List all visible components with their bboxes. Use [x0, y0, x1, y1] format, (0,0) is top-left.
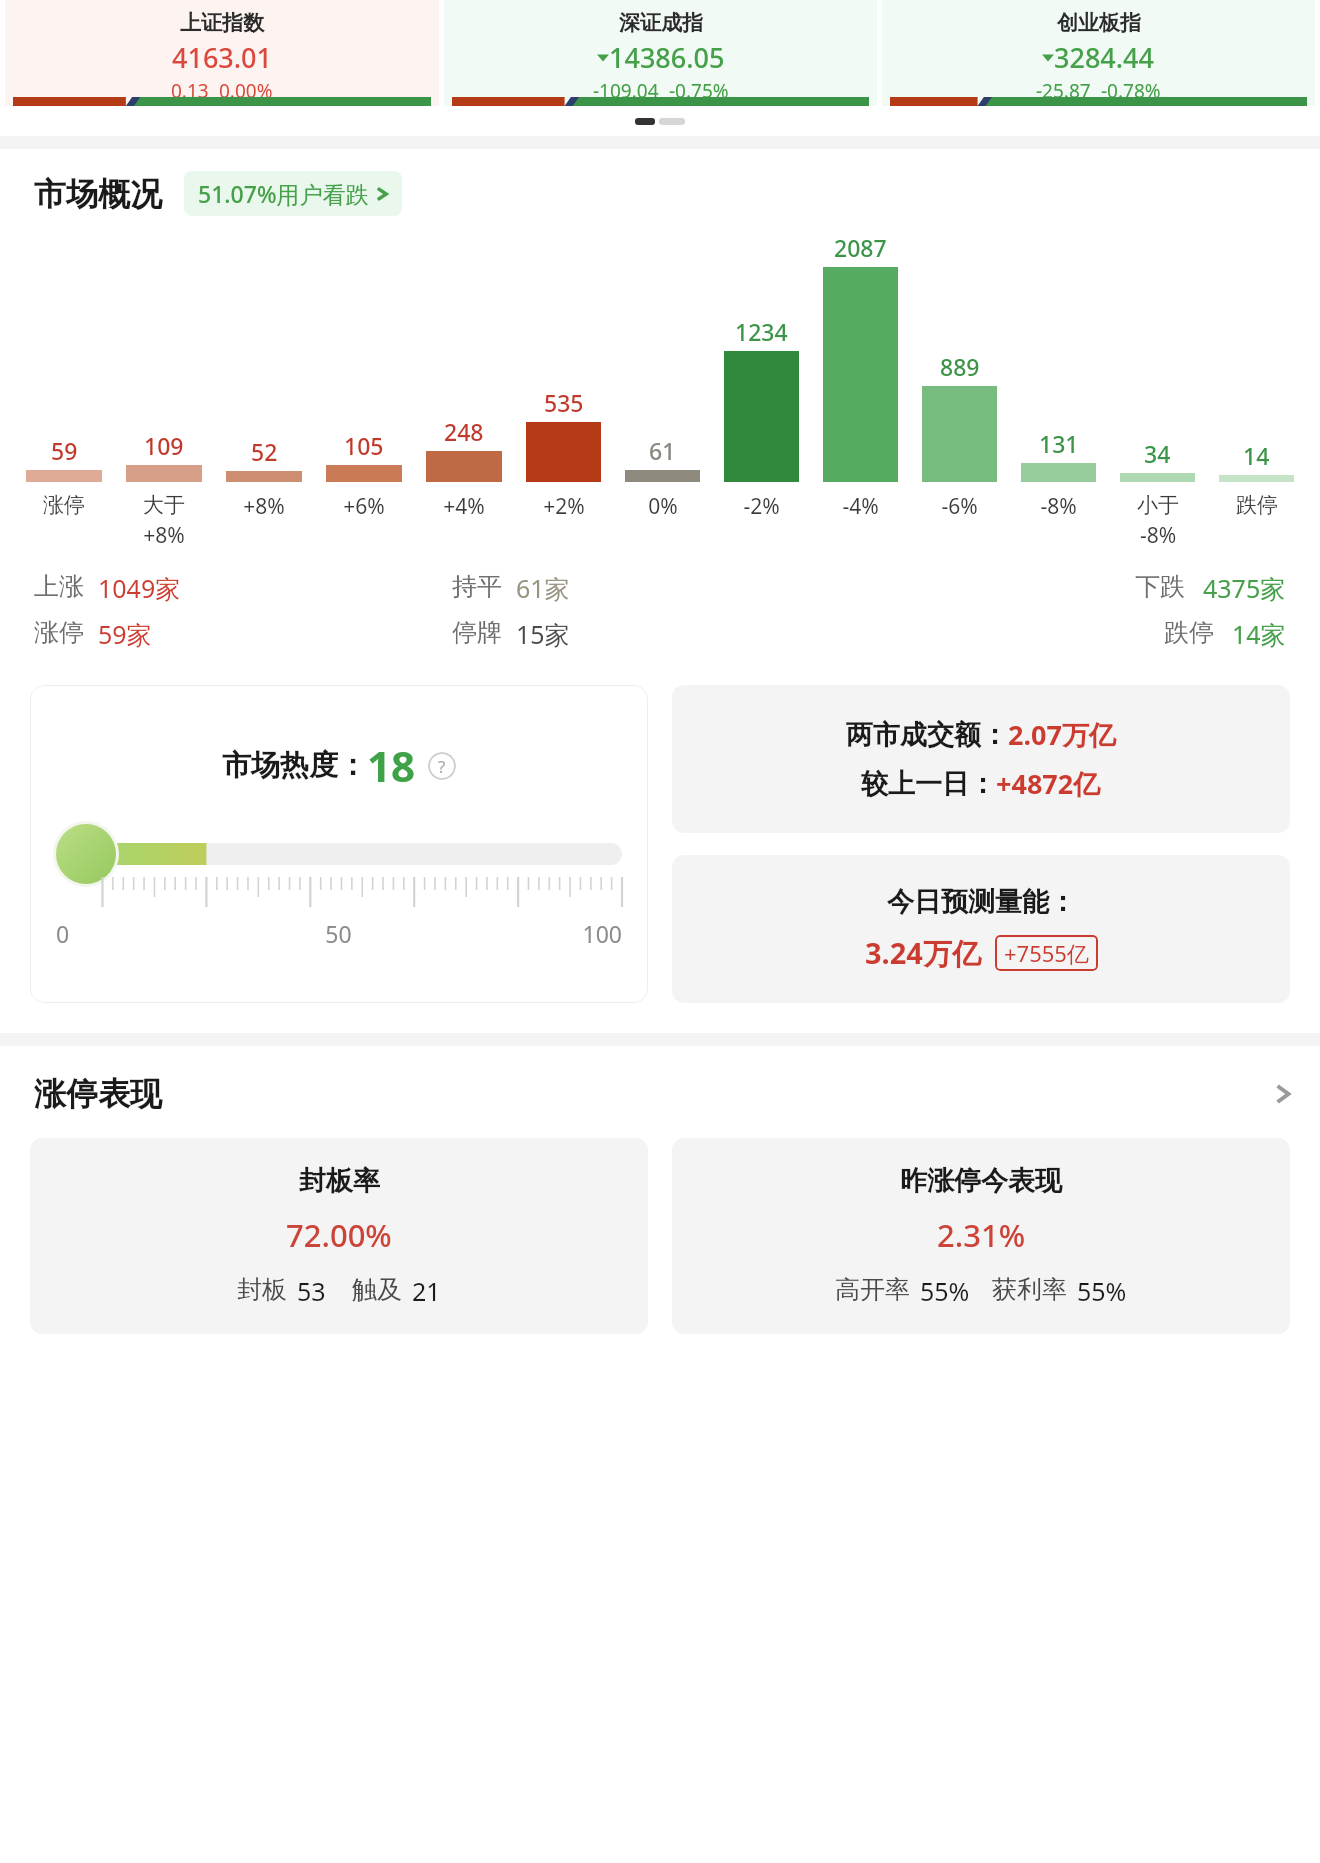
button[interactable]: 封板率	[30, 1138, 648, 1334]
staticText: +7555亿	[1004, 938, 1089, 968]
staticText: -8%	[1040, 492, 1077, 521]
staticText: 50	[244, 918, 433, 949]
staticText: 889	[940, 351, 980, 382]
staticText: +4%	[443, 492, 485, 521]
staticText: 59家	[98, 617, 152, 651]
staticText: 封板	[237, 1274, 287, 1305]
staticText: 3.24万亿	[865, 933, 981, 973]
staticText: 0.00%	[219, 78, 273, 104]
staticText: 昨涨停今表现	[900, 1164, 1062, 1198]
staticText: 131	[1039, 428, 1079, 459]
staticText: -2%	[743, 492, 780, 521]
staticText: 涨停表现	[34, 1074, 162, 1114]
button[interactable]: 市场热度：	[30, 685, 648, 1003]
staticText: -0.78%	[1101, 78, 1161, 104]
button[interactable]: 深证成指	[444, 0, 877, 106]
button[interactable]: 上证指数	[5, 0, 439, 106]
staticText: 高开率	[835, 1274, 910, 1305]
staticText: -0.75%	[669, 78, 729, 104]
staticText: 2.31%	[937, 1214, 1026, 1256]
staticText: 59	[51, 435, 78, 466]
staticText: 0%	[648, 492, 678, 521]
staticText: +8%	[243, 492, 285, 521]
staticText: 535	[544, 387, 584, 418]
staticText: 今日预测量能：	[887, 885, 1076, 919]
staticText: 两市成交额：	[846, 718, 1008, 752]
staticText: 上证指数	[180, 10, 264, 36]
staticText: 创业板指	[1057, 10, 1141, 36]
staticText: 14家	[1232, 617, 1286, 651]
staticText: 小于 -8%	[1137, 492, 1179, 549]
staticText: 市场热度：	[222, 747, 367, 784]
staticText: 61家	[516, 571, 570, 605]
staticText: 55%	[920, 1274, 970, 1308]
staticText: 72.00%	[286, 1214, 392, 1256]
staticText: 61	[649, 435, 676, 466]
staticText: +6%	[343, 492, 385, 521]
staticText: 15家	[516, 617, 570, 651]
staticText: 2087	[834, 232, 887, 263]
button[interactable]: 51.07%用户看跌	[184, 171, 402, 216]
staticText: 停牌	[452, 617, 502, 648]
staticText: 涨停	[34, 617, 84, 648]
staticText: 109	[144, 430, 184, 461]
staticText: 55%	[1077, 1274, 1127, 1308]
staticText: 14	[1243, 440, 1270, 471]
staticText: 1049家	[98, 571, 181, 605]
staticText: -4%	[842, 492, 879, 521]
staticText: -6%	[941, 492, 978, 521]
staticText: -25.87	[1036, 78, 1091, 104]
staticText: 跌停	[1236, 492, 1278, 518]
staticText: ?	[438, 755, 446, 778]
staticText: -109.04	[593, 78, 659, 104]
staticText: 4163.01	[172, 39, 273, 76]
staticText: 21	[412, 1274, 441, 1308]
other: 更多	[1274, 1078, 1292, 1110]
staticText: 获利率	[992, 1274, 1067, 1305]
staticText: 较上一日：	[861, 767, 996, 801]
staticText: 100	[433, 918, 622, 949]
staticText: 涨停	[43, 492, 85, 518]
staticText: 跌停	[1164, 617, 1214, 648]
button[interactable]: 今日预测量能：	[672, 855, 1290, 1003]
staticText: 深证成指	[619, 10, 703, 36]
staticText: 51.07%用户看跌	[198, 178, 369, 209]
button[interactable]: 创业板指	[882, 0, 1315, 106]
staticText: 触及	[352, 1274, 402, 1305]
staticText: 34	[1144, 438, 1171, 469]
button[interactable]: 两市成交额：	[672, 685, 1290, 833]
staticText: 4375家	[1203, 571, 1286, 605]
staticText: +4872亿	[996, 765, 1101, 802]
staticText: 52	[251, 436, 278, 467]
staticText: 大于 +8%	[143, 492, 185, 549]
staticText: 2.07万亿	[1008, 716, 1116, 753]
staticText: 1234	[735, 316, 788, 347]
staticText: 市场概况	[34, 174, 162, 214]
staticText: 0.13	[171, 78, 209, 104]
staticText: 18	[367, 737, 416, 794]
staticText: +2%	[543, 492, 585, 521]
staticText: 53	[297, 1274, 326, 1308]
staticText: 248	[444, 416, 484, 447]
staticText: 持平	[452, 571, 502, 602]
button[interactable]: 涨停表现	[34, 1074, 1292, 1114]
button[interactable]: 说明	[428, 752, 456, 780]
staticText: 14386.05	[609, 39, 725, 76]
staticText: 封板率	[299, 1164, 380, 1198]
staticText: 3284.44	[1054, 39, 1155, 76]
button[interactable]: 昨涨停今表现	[672, 1138, 1290, 1334]
staticText: 0	[56, 918, 244, 949]
staticText: 上涨	[34, 571, 84, 602]
staticText: 105	[344, 430, 384, 461]
staticText: 下跌	[1135, 571, 1185, 602]
